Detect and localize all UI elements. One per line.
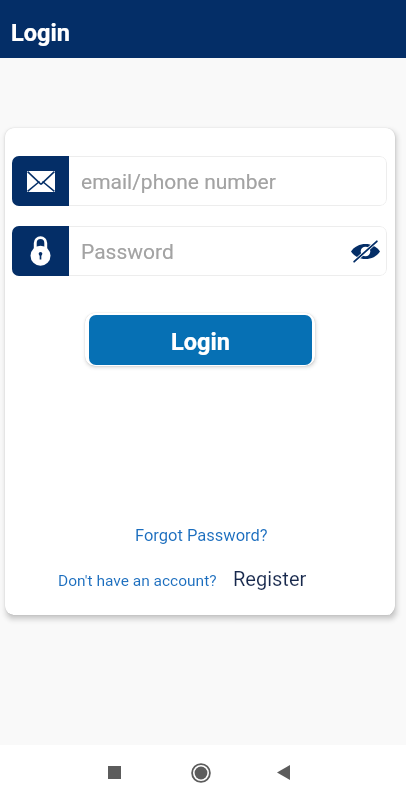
button[interactable]: Don't have an account?: [54, 568, 221, 594]
staticText: Login: [171, 328, 230, 356]
button[interactable]: Recents: [94, 752, 135, 793]
staticText: Password: [81, 240, 174, 265]
button[interactable]: Register: [229, 563, 311, 594]
staticText: Don't have an account?: [58, 572, 217, 590]
staticText: email/phone number: [81, 170, 276, 195]
staticText: Register: [233, 567, 307, 590]
staticText: Forgot Password?: [135, 526, 268, 545]
button[interactable]: Back: [263, 752, 304, 793]
button[interactable]: Show password: [346, 232, 384, 270]
button[interactable]: Home: [180, 752, 221, 793]
button[interactable]: Login: [85, 313, 315, 366]
staticText: Login: [11, 19, 70, 47]
button[interactable]: Forgot Password?: [127, 521, 276, 550]
